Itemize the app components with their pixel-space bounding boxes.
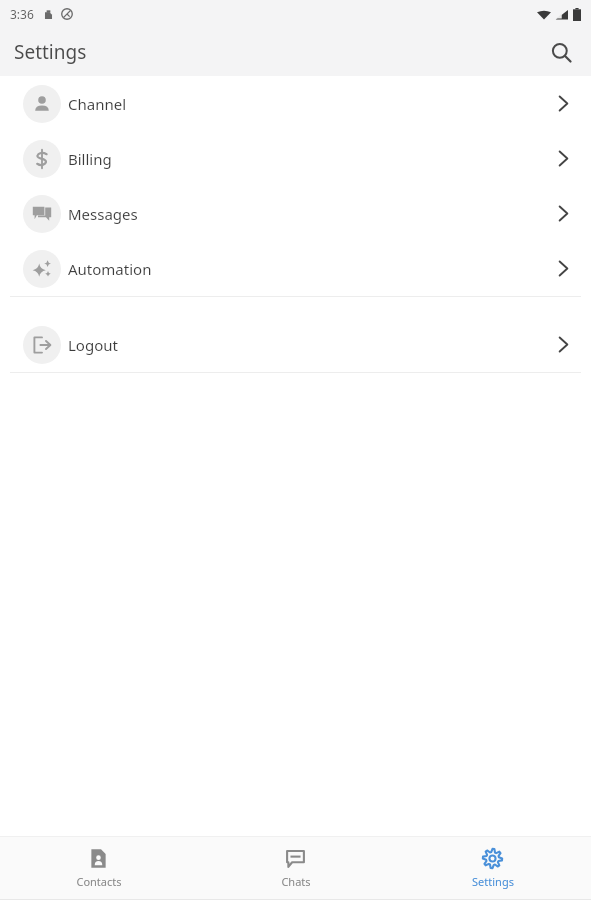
staticText: Chats xyxy=(281,874,311,889)
staticText: Channel xyxy=(68,94,127,114)
button[interactable]: Messages xyxy=(0,186,591,241)
button[interactable]: Search xyxy=(539,30,583,74)
button[interactable]: Contacts xyxy=(0,837,197,899)
button[interactable]: Chats xyxy=(197,837,394,899)
button[interactable]: Settings xyxy=(394,837,591,899)
staticText: Logout xyxy=(68,335,118,355)
staticText: Billing xyxy=(68,149,112,169)
staticText: Settings xyxy=(472,874,514,889)
button[interactable]: Automation xyxy=(0,241,591,296)
staticText: Automation xyxy=(68,259,152,279)
staticText: Settings xyxy=(14,39,87,65)
button[interactable]: Logout xyxy=(0,317,591,372)
staticText: Contacts xyxy=(76,874,122,889)
staticText: Messages xyxy=(68,204,138,224)
button[interactable]: Billing xyxy=(0,131,591,186)
staticText: 3:36 xyxy=(10,6,34,22)
button[interactable]: Channel xyxy=(0,76,591,131)
